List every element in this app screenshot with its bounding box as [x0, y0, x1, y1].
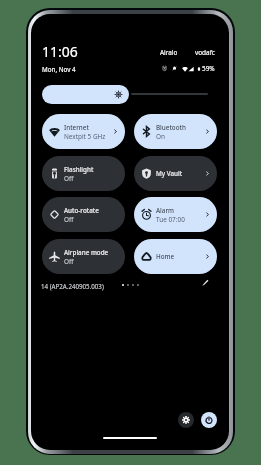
- button[interactable]: Alarm: [134, 197, 217, 232]
- staticText: 14 (AP2A.240905.003): [41, 282, 104, 290]
- button[interactable]: My Vault: [134, 156, 217, 191]
- button[interactable]: Flashlight: [42, 156, 125, 191]
- staticText: Off: [64, 215, 74, 224]
- staticText: On: [156, 132, 165, 141]
- staticText: Mon, Nov 4: [42, 65, 76, 74]
- staticText: Airalo: [160, 48, 178, 57]
- staticText: Tue 07:00: [156, 215, 185, 224]
- staticText: Flashlight: [64, 165, 94, 174]
- button[interactable]: Internet: [42, 114, 125, 149]
- button[interactable]: Bluetooth: [134, 114, 217, 149]
- staticText: Bluetooth: [156, 123, 186, 132]
- button[interactable]: Airplane mode: [42, 239, 125, 274]
- staticText: 59%: [202, 64, 215, 73]
- button[interactable]: Auto-rotate: [42, 197, 125, 232]
- staticText: My Vault: [156, 169, 183, 178]
- button[interactable]: Settings: [178, 412, 194, 428]
- staticText: Off: [64, 174, 74, 183]
- button[interactable]: Power: [201, 412, 217, 428]
- staticText: Home: [156, 252, 175, 261]
- staticText: Alarm: [156, 206, 175, 215]
- button[interactable]: Edit tiles: [197, 274, 213, 290]
- button[interactable]: Home: [134, 239, 217, 274]
- staticText: 11:06: [42, 42, 78, 61]
- staticText: Auto-rotate: [64, 206, 99, 215]
- staticText: vodafc: [195, 48, 215, 57]
- staticText: Internet: [64, 123, 89, 132]
- staticText: Airplane mode: [64, 248, 109, 257]
- staticText: Nextpit 5 GHz: [64, 132, 106, 141]
- staticText: Off: [64, 257, 74, 266]
- button[interactable]: Brightness: [42, 85, 129, 104]
